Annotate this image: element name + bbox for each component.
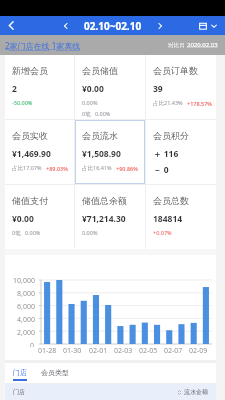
button[interactable]: 会员储值 [75, 55, 145, 119]
staticText: +90.86% [116, 165, 138, 172]
button[interactable]: Back [4, 18, 19, 33]
staticText: ¥1,469.90 [12, 148, 51, 160]
staticText: 02-05 [139, 346, 158, 356]
staticText: 4,000 [17, 315, 35, 325]
staticText: 会员订单数 [153, 65, 198, 76]
staticText: 会员流水 [82, 130, 118, 141]
staticText: 02.10~02.10 [84, 19, 142, 33]
button[interactable]: 会员流水 [75, 120, 145, 184]
staticText: 新增会员 [12, 65, 48, 76]
button[interactable]: 会员订单数 [146, 55, 216, 119]
staticText: 02-01 [89, 346, 108, 356]
staticText: 0.00% [82, 229, 98, 236]
staticText: 对比日 [168, 42, 185, 49]
staticText: 门店 [13, 388, 25, 396]
button[interactable]: 2家门店在线 1家离线 [5, 40, 81, 51]
staticText: 会员储值 [82, 65, 118, 76]
staticText: 02-09 [189, 346, 208, 356]
button[interactable]: 门店 [13, 363, 27, 381]
staticText: 0笔 0.00% [12, 229, 41, 237]
staticText: 39 [153, 83, 163, 95]
staticText: ¥0.00 [82, 83, 104, 95]
button[interactable]: 新增会员 [5, 55, 74, 119]
button[interactable]: 会员积分 [146, 120, 216, 184]
staticText: 2家门店在线 1家离线 [5, 40, 81, 51]
staticText: ¥1,508.90 [82, 148, 121, 160]
staticText: 会员总数 [153, 195, 189, 206]
staticText: 占比21.43% [153, 99, 183, 107]
staticText: 0.00% [82, 99, 98, 106]
button[interactable]: Previous date [60, 20, 72, 32]
button[interactable]: Select date range [199, 16, 217, 35]
staticText: +0.07% [153, 229, 172, 236]
staticText: +178.57% [187, 100, 213, 107]
button[interactable]: 对比日 [168, 41, 218, 49]
staticText: 占比16.41% [82, 164, 112, 172]
staticText: ＋ 116 [153, 148, 179, 160]
staticText: 184814 [153, 213, 183, 225]
staticText: ¥71,214.30 [82, 213, 126, 225]
staticText: 会员实收 [12, 130, 48, 141]
button[interactable]: 储值总余额 [75, 185, 145, 249]
staticText: － 0 [153, 164, 169, 176]
button[interactable]: 流水金额 [177, 388, 208, 396]
button[interactable]: 会员实收 [5, 120, 74, 184]
staticText: 占比17.07% [12, 164, 42, 172]
staticText: 会员类型 [41, 368, 69, 377]
staticText: 会员积分 [153, 130, 189, 141]
staticText: 流水金额 [184, 388, 208, 396]
staticText: 01-30 [63, 346, 82, 356]
button[interactable]: Next date [154, 20, 166, 32]
button[interactable]: 会员类型 [41, 363, 69, 377]
staticText: 6,000 [17, 302, 35, 312]
staticText: 2020.02.03 [187, 41, 218, 49]
staticText: 02-07 [164, 346, 183, 356]
staticText: 储值支付 [12, 195, 48, 206]
button[interactable]: 储值支付 [5, 185, 74, 249]
staticText: 0笔 0.00% [82, 110, 111, 118]
staticText: 01-28 [38, 346, 57, 356]
staticText: 2,000 [17, 328, 35, 338]
staticText: 门店 [13, 368, 27, 377]
staticText: ¥0.00 [12, 213, 34, 225]
staticText: +89.03% [46, 165, 68, 172]
staticText: 8,000 [17, 289, 35, 299]
staticText: -50.00% [12, 99, 33, 106]
staticText: 10,000 [13, 276, 35, 286]
staticText: 储值总余额 [82, 195, 127, 206]
button[interactable]: 会员总数 [146, 185, 216, 249]
staticText: 2 [12, 83, 17, 95]
staticText: 0 [30, 341, 35, 347]
staticText: 02-03 [114, 346, 133, 356]
